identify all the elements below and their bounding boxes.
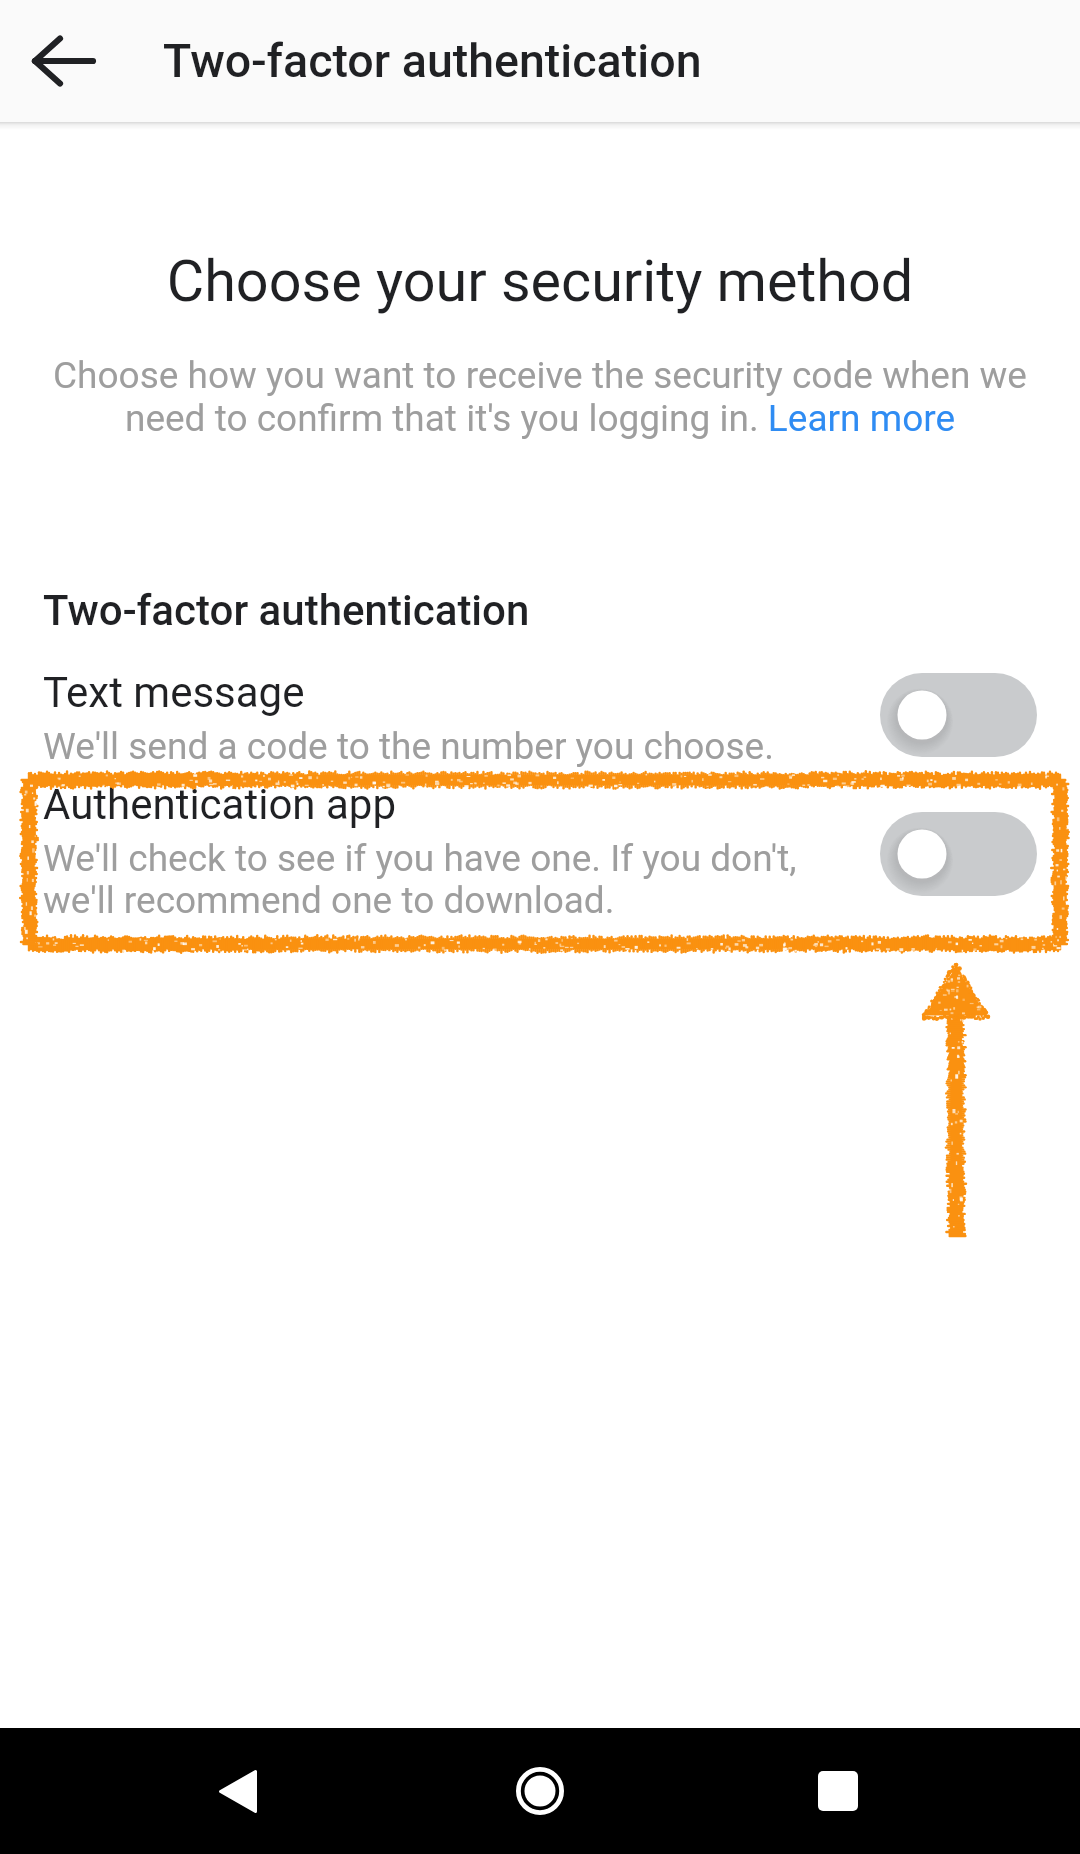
staticText: Two-factor authentication (163, 34, 702, 89)
staticText: Choose your security method (0, 248, 1080, 315)
button[interactable] (0, 655, 1080, 770)
button[interactable]: Navigate up (13, 11, 113, 111)
staticText: We'll check to see if you have one. If y… (43, 837, 797, 922)
staticText: Two-factor authentication (43, 586, 530, 635)
staticText: We'll send a code to the number you choo… (43, 725, 774, 768)
button[interactable]: Recent apps (778, 1731, 898, 1851)
staticText: Authentication app (43, 780, 396, 829)
button[interactable]: Back (178, 1731, 298, 1851)
button[interactable]: Home (480, 1731, 600, 1851)
staticText: Text message (43, 668, 305, 717)
button[interactable]: Toggle off (880, 812, 1037, 896)
staticText: Choose how you want to receive the secur… (40, 354, 1040, 440)
button[interactable]: Toggle off (880, 673, 1037, 757)
button[interactable] (0, 780, 1080, 945)
